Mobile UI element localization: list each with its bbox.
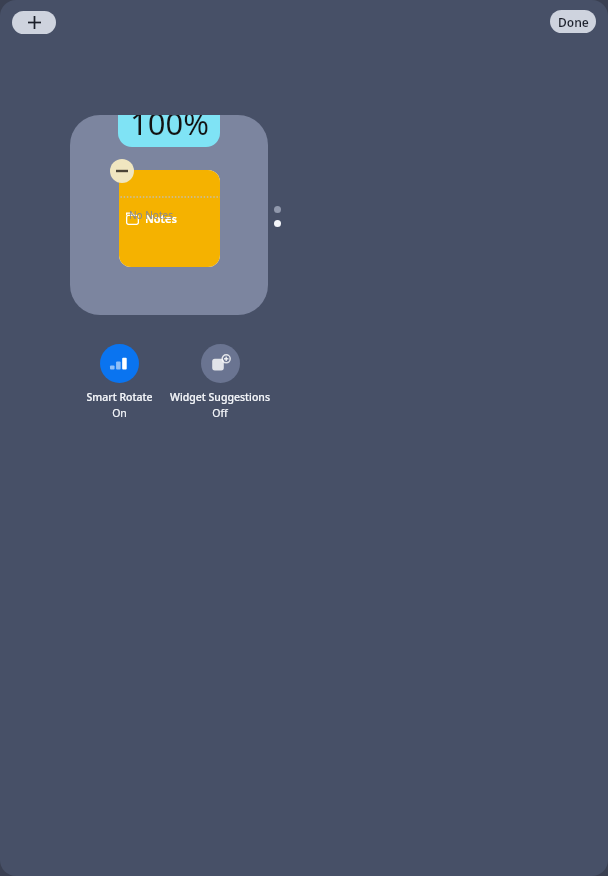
button[interactable]: Widget Suggestions xyxy=(155,344,285,420)
staticText: On xyxy=(112,406,127,420)
button[interactable]: 100% xyxy=(118,115,220,147)
staticText: No Notes xyxy=(129,208,173,222)
staticText: Smart Rotate xyxy=(86,390,153,404)
button[interactable]: Smart Rotate xyxy=(54,344,184,420)
button[interactable]: Notes xyxy=(119,170,220,267)
staticText: Done xyxy=(558,14,589,30)
staticText: Notes xyxy=(145,211,177,226)
button[interactable]: Remove widget xyxy=(110,159,134,183)
staticText: 100% xyxy=(130,115,209,144)
staticText: Widget Suggestions xyxy=(170,390,270,404)
button[interactable] xyxy=(70,115,268,315)
button[interactable]: Add widget xyxy=(12,11,56,34)
button[interactable]: Done xyxy=(550,10,596,33)
staticText: Off xyxy=(212,406,228,420)
